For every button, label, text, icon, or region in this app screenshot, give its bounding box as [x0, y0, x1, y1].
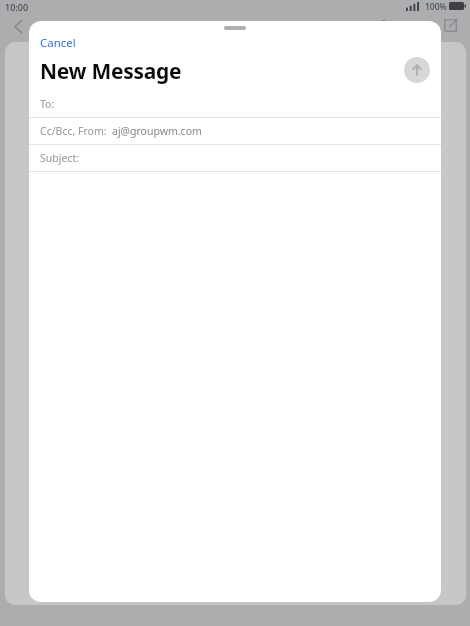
button[interactable]: Compose	[441, 16, 459, 34]
button[interactable]: Move to folder	[407, 16, 425, 34]
button[interactable]: To:	[29, 91, 441, 117]
staticText: Cc/Bcc, From:	[40, 124, 107, 138]
button[interactable]: Cc/Bcc, From:	[29, 118, 441, 144]
button[interactable]: Subject:	[29, 145, 441, 171]
staticText: Subject:	[40, 151, 79, 165]
button[interactable]: Send	[404, 57, 430, 83]
button[interactable]: Delete	[374, 16, 392, 34]
staticText: Cancel	[40, 35, 76, 51]
button[interactable]: Cancel	[32, 31, 84, 55]
staticText: New Message	[40, 57, 182, 86]
button[interactable]: Back	[8, 16, 28, 36]
staticText: aj@groupwm.com	[112, 124, 202, 138]
staticText: To:	[40, 97, 55, 111]
staticText: 100%	[425, 1, 447, 13]
staticText: 10:00	[5, 1, 29, 13]
